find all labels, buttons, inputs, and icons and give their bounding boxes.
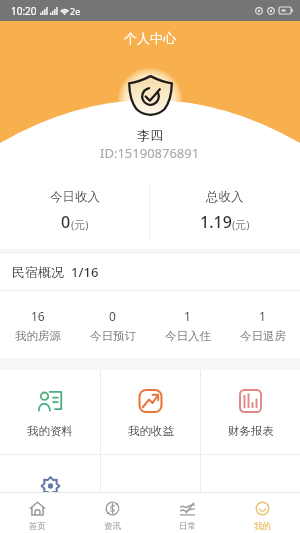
staticText: (元)	[71, 217, 89, 232]
staticText: 设置	[39, 509, 62, 523]
staticText: 今日收入	[50, 189, 100, 205]
staticText: 李四	[137, 127, 163, 143]
staticText: 资讯	[104, 521, 121, 532]
staticText: 1	[184, 308, 191, 324]
button[interactable]: 16	[0, 291, 75, 358]
staticText: 民宿概况	[12, 264, 64, 280]
staticText: 2e	[70, 5, 81, 17]
staticText: 个人中心	[124, 30, 176, 46]
staticText: 我的房源	[15, 329, 61, 343]
staticText: 0	[109, 308, 116, 324]
other: User avatar badge	[128, 75, 173, 116]
button[interactable]: 1	[225, 291, 300, 358]
staticText: 我的资料	[27, 424, 73, 438]
staticText: 1/16	[71, 263, 99, 281]
staticText: 1	[259, 308, 266, 324]
staticText: 0	[61, 211, 71, 233]
staticText: 1.19	[200, 211, 232, 233]
staticText: 日常	[179, 521, 196, 532]
staticText: 10:20	[11, 4, 37, 18]
staticText: (元)	[232, 217, 250, 232]
button[interactable]: 首页	[0, 493, 75, 533]
staticText: ID:15190876891	[100, 144, 200, 162]
button[interactable]: 设置	[0, 455, 100, 533]
button[interactable]: 总收入	[150, 164, 300, 249]
staticText: 16	[31, 308, 45, 324]
staticText: 我的收益	[128, 424, 174, 438]
staticText: 今日预订	[90, 329, 136, 343]
button[interactable]: 1	[150, 291, 225, 358]
button[interactable]: 资讯	[75, 493, 150, 533]
staticText: 今日入住	[165, 329, 211, 343]
staticText: 财务报表	[228, 424, 274, 438]
button[interactable]: 今日收入	[0, 164, 149, 249]
button[interactable]: 我的	[225, 493, 300, 533]
staticText: 总收入	[206, 189, 244, 205]
staticText: 我的	[254, 521, 271, 532]
button[interactable]: 0	[75, 291, 150, 358]
button[interactable]: 我的收益	[101, 370, 200, 454]
staticText: 今日退房	[240, 329, 286, 343]
button[interactable]: 财务报表	[201, 370, 300, 454]
button[interactable]: 我的资料	[0, 370, 100, 454]
button[interactable]: 日常	[150, 493, 225, 533]
staticText: 首页	[29, 521, 46, 532]
